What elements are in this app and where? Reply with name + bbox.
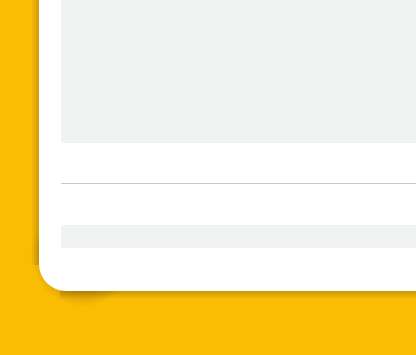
- button[interactable]: Image: [39, 0, 416, 291]
